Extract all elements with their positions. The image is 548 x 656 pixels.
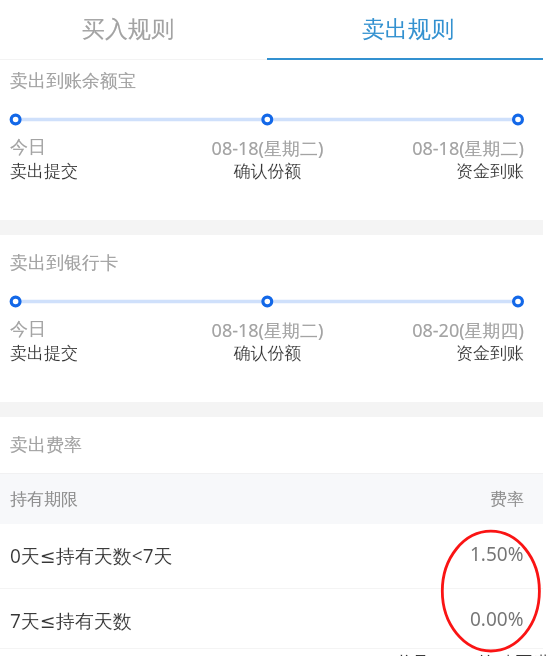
staticText: 0.00%: [470, 606, 524, 632]
staticText: 7天≤持有天数: [10, 608, 132, 634]
button[interactable]: 7天≤持有天数: [0, 591, 548, 651]
staticText: 08-20(星期四): [353, 318, 524, 343]
staticText: 08-18(星期二): [353, 136, 524, 161]
staticText: 卖出费率: [10, 434, 82, 457]
staticText: 确认份额: [182, 161, 353, 182]
staticText: 确认份额: [182, 343, 353, 364]
staticText: 今日: [10, 136, 182, 159]
staticText: 1.50%: [470, 541, 524, 567]
staticText: 资金到账: [353, 161, 524, 182]
button[interactable]: 0天≤持有天数<7天: [0, 524, 548, 588]
staticText: 今日: [10, 318, 182, 341]
staticText: 08-18(星期二): [182, 136, 353, 161]
button[interactable]: 买入规则: [0, 0, 266, 58]
staticText: 持有期限: [10, 489, 78, 510]
staticText: 卖出提交: [10, 343, 182, 364]
staticText: 08-18(星期二): [182, 318, 353, 343]
staticText: 卖出到银行卡: [10, 252, 118, 275]
other: Highlighted redemption fees: [0, 0, 548, 656]
staticText: 0天≤持有天数<7天: [10, 543, 173, 569]
staticText: 卖出规则: [362, 15, 454, 44]
staticText: 买入规则: [82, 15, 174, 44]
button[interactable]: 卖出规则: [270, 0, 546, 58]
staticText: 卖出到账余额宝: [10, 70, 136, 93]
staticText: 收取0.5%的赎回费(: [396, 650, 548, 656]
staticText: 资金到账: [353, 343, 524, 364]
staticText: 卖出提交: [10, 161, 182, 182]
staticText: 费率: [490, 489, 524, 510]
